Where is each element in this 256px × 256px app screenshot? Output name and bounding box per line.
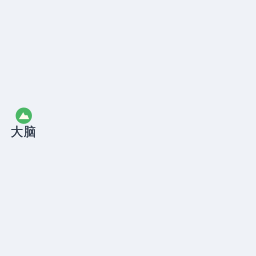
staticText: 大脑 (11, 124, 37, 140)
button[interactable]: 大脑 (0, 0, 256, 256)
staticText: 大脑 (10, 124, 36, 140)
